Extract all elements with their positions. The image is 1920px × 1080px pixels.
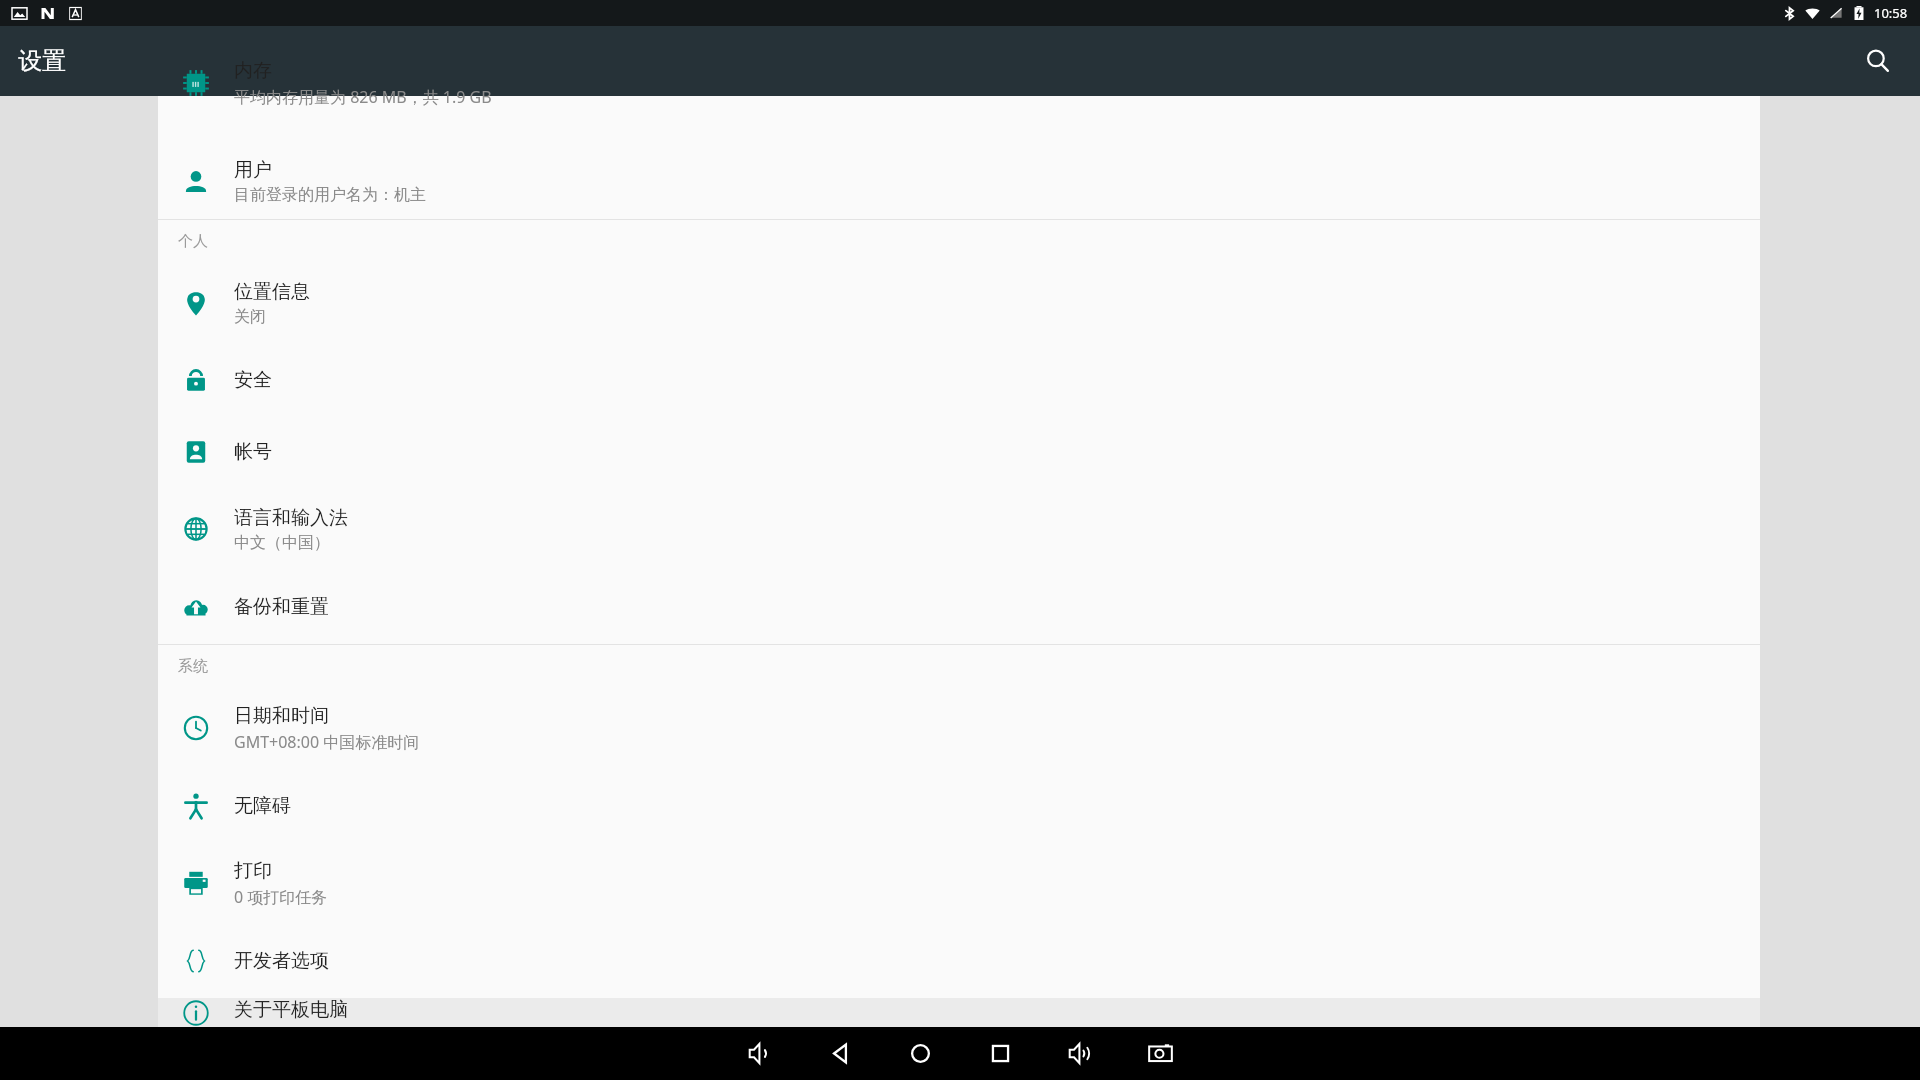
button[interactable]: 位置信息 xyxy=(158,262,1760,344)
staticText: 日期和时间 xyxy=(234,704,329,728)
button[interactable]: Home xyxy=(880,1027,960,1080)
staticText: 关闭 xyxy=(234,307,266,327)
staticText: 个人 xyxy=(178,232,208,251)
button[interactable]: 帐号 xyxy=(158,416,1760,488)
button[interactable]: 关于平板电脑 xyxy=(158,998,1760,1027)
button[interactable]: 无障碍 xyxy=(158,769,1760,842)
button[interactable]: 语言和输入法 xyxy=(158,488,1760,570)
button[interactable]: 开发者选项 xyxy=(158,924,1760,998)
button[interactable]: 日期和时间 xyxy=(158,687,1760,769)
staticText: 平均内存用量为 826 MB，共 1.9 GB xyxy=(234,86,492,107)
staticText: 目前登录的用户名为：机主 xyxy=(234,185,426,205)
button[interactable]: Search xyxy=(1850,33,1906,89)
staticText: 0 项打印任务 xyxy=(234,886,328,908)
staticText: 用户 xyxy=(234,158,272,182)
staticText: GMT+08:00 中国标准时间 xyxy=(234,731,420,753)
button[interactable]: 内存 xyxy=(158,59,1760,107)
staticText: 帐号 xyxy=(234,440,272,464)
staticText: 10:58 xyxy=(1874,4,1908,22)
staticText: 无障碍 xyxy=(234,794,291,818)
staticText: 备份和重置 xyxy=(234,595,329,619)
button[interactable]: Volume down xyxy=(720,1027,800,1080)
staticText: 打印 xyxy=(234,859,272,883)
button[interactable]: Back xyxy=(800,1027,880,1080)
staticText: 设置 xyxy=(18,46,66,76)
button[interactable]: Volume up xyxy=(1040,1027,1120,1080)
staticText: 开发者选项 xyxy=(234,949,329,973)
staticText: 位置信息 xyxy=(234,280,310,304)
button[interactable]: 打印 xyxy=(158,842,1760,924)
button[interactable]: 用户 xyxy=(158,144,1760,219)
staticText: 中文（中国） xyxy=(234,533,330,553)
button[interactable]: 备份和重置 xyxy=(158,570,1760,644)
button[interactable]: 安全 xyxy=(158,344,1760,416)
staticText: 系统 xyxy=(178,657,208,676)
button[interactable]: Recent apps xyxy=(960,1027,1040,1080)
staticText: 内存 xyxy=(234,59,272,83)
staticText: 关于平板电脑 xyxy=(234,998,348,1022)
staticText: 语言和输入法 xyxy=(234,506,348,530)
staticText: 安全 xyxy=(234,368,272,392)
button[interactable]: Screenshot xyxy=(1120,1027,1200,1080)
